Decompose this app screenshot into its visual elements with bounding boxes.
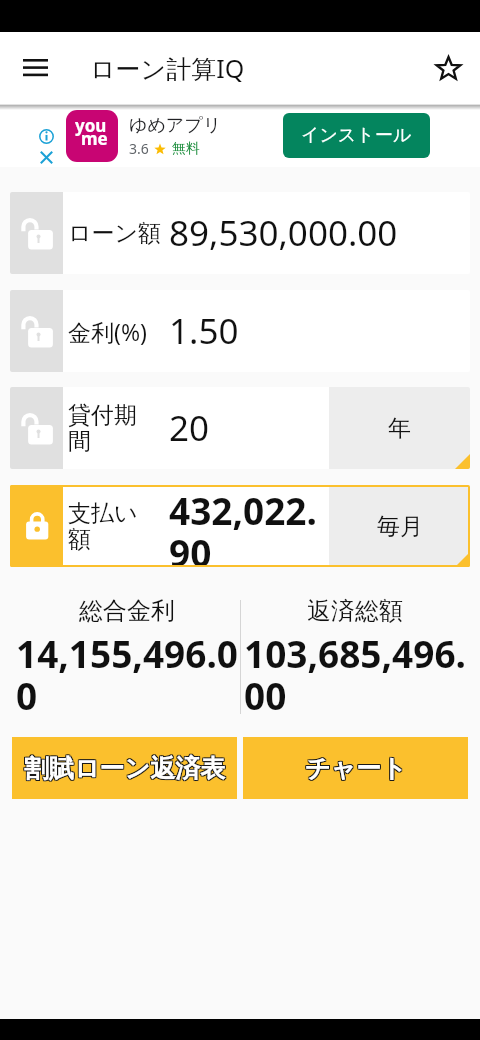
staticText: 14,155,496.0 0: [16, 628, 238, 721]
staticText: 返済総額: [307, 596, 403, 626]
staticText: チャート: [305, 754, 407, 785]
staticText: 支払い 額: [68, 499, 162, 554]
staticText: 貸付期 間: [68, 401, 162, 456]
button[interactable]: Add to favorites: [421, 32, 476, 104]
button[interactable]: Close ad: [40, 151, 53, 164]
staticText: 無料: [172, 140, 200, 158]
button[interactable]: 金利(%): [10, 290, 470, 372]
staticText: チャート: [306, 752, 408, 783]
staticText: チャート: [305, 752, 407, 783]
staticText: 103,685,496. 00: [244, 628, 466, 721]
button[interactable]: Ad information: [39, 129, 54, 144]
staticText: 割賦ローン返済表: [25, 754, 227, 785]
button[interactable]: Open navigation menu: [0, 32, 71, 104]
staticText: 432,022. 90: [169, 485, 317, 567]
staticText: 割賦ローン返済表: [24, 752, 226, 783]
staticText: 総合金利: [79, 596, 175, 626]
button[interactable]: インストール: [283, 113, 430, 158]
staticText: me: [81, 127, 108, 150]
staticText: 89,530,000.00: [169, 209, 398, 257]
staticText: 割賦ローン返済表: [24, 753, 226, 784]
staticText: ゆめアプリ: [129, 114, 222, 137]
button[interactable]: チャート: [243, 737, 468, 799]
staticText: 割賦ローン返済表: [25, 753, 227, 784]
staticText: チャート: [304, 753, 406, 784]
staticText: チャート: [306, 753, 408, 784]
staticText: 金利(%): [68, 316, 162, 347]
staticText: ローン計算IQ: [90, 51, 245, 85]
staticText: 1.50: [169, 307, 239, 355]
staticText: you: [75, 114, 107, 137]
staticText: チャート: [304, 752, 406, 783]
staticText: 割賦ローン返済表: [24, 754, 226, 785]
staticText: 年: [388, 414, 411, 443]
staticText: 割賦ローン返済表: [23, 754, 225, 785]
button[interactable]: 支払い 額: [10, 485, 470, 567]
staticText: 割賦ローン返済表: [23, 753, 225, 784]
staticText: ローン額: [68, 219, 162, 248]
staticText: 割賦ローン返済表: [23, 752, 225, 783]
staticText: 毎月: [377, 512, 423, 541]
staticText: 20: [169, 404, 210, 452]
button[interactable]: 貸付期 間: [10, 387, 470, 469]
staticText: チャート: [304, 754, 406, 785]
button[interactable]: ローン額: [10, 192, 470, 274]
button[interactable]: you: [66, 110, 118, 162]
staticText: チャート: [305, 753, 407, 784]
button[interactable]: 割賦ローン返済表: [12, 737, 237, 799]
staticText: 3.6: [129, 139, 149, 158]
staticText: 割賦ローン返済表: [25, 752, 227, 783]
staticText: インストール: [301, 124, 412, 147]
staticText: チャート: [306, 754, 408, 785]
